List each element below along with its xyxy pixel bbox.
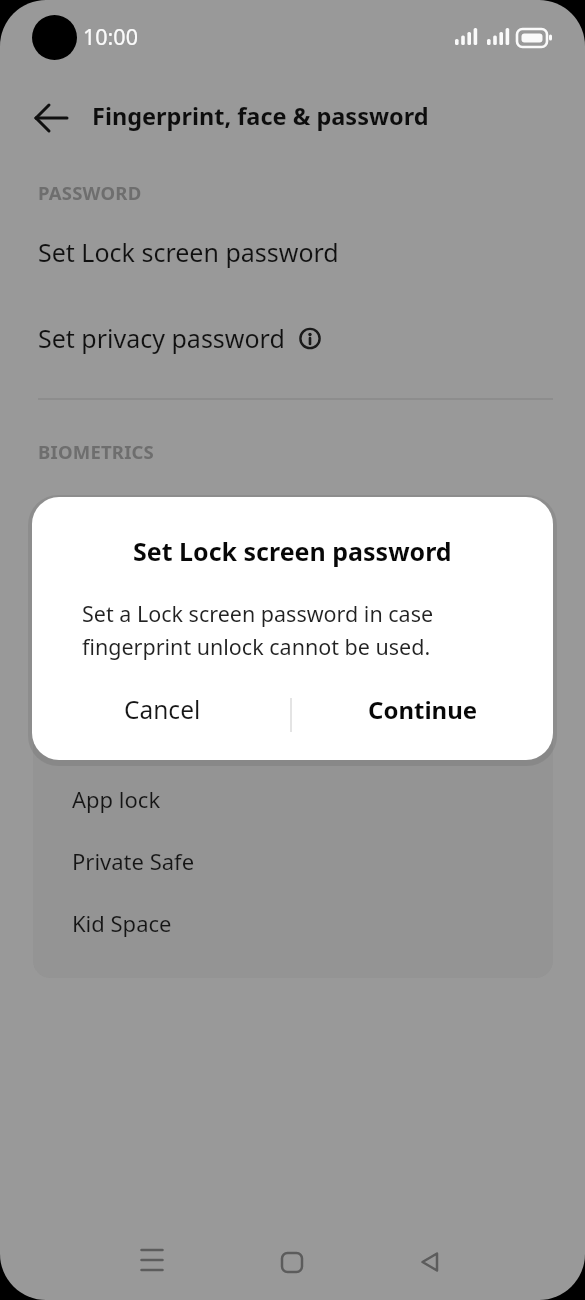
staticText: Kid Space [72,908,172,938]
button[interactable] [128,1236,176,1284]
staticText: App lock [72,784,161,814]
staticText: Fingerprint, face & password [92,100,429,132]
staticText: PASSWORD [38,180,142,205]
button[interactable]: Cancel [52,682,272,736]
button[interactable]: Continue [313,682,533,736]
button[interactable] [28,95,74,141]
button[interactable] [406,1238,454,1286]
staticText: Private Safe [72,846,195,876]
button[interactable]: Set privacy password [0,310,585,366]
staticText: Set privacy password [38,321,285,355]
staticText: Set a Lock screen password in case finge… [82,599,434,661]
staticText: BIOMETRICS [38,439,155,464]
staticText: Set Lock screen password [133,534,452,568]
button[interactable]: App lock [33,767,553,831]
button[interactable]: Kid Space [33,891,553,955]
button[interactable]: Set Lock screen password [0,224,585,280]
button[interactable]: Private Safe [33,829,553,893]
button[interactable] [268,1238,316,1286]
staticText: 10:00 [83,22,138,51]
staticText: Continue [368,693,478,726]
staticText: Cancel [124,693,201,726]
staticText: Set Lock screen password [38,235,339,269]
